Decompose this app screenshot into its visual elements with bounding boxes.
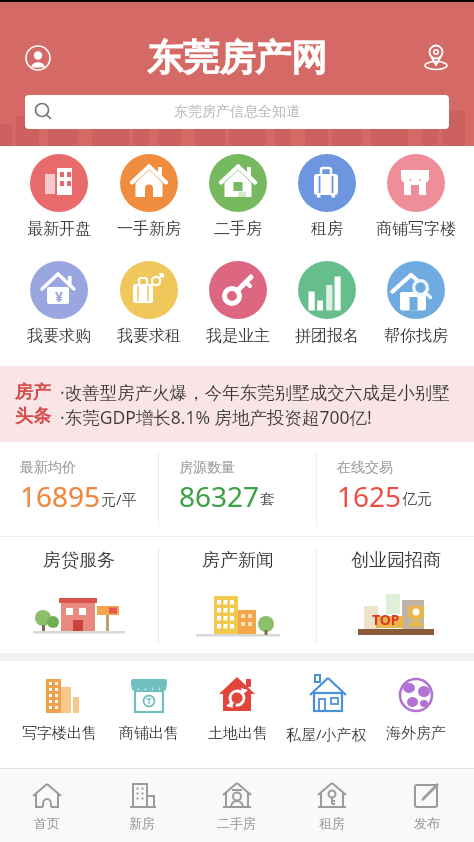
staticText: 最新开盘: [27, 219, 91, 239]
staticText: 土地出售: [208, 724, 268, 743]
button[interactable]: 最新开盘: [14, 154, 104, 239]
button[interactable]: 一手新房: [104, 154, 193, 239]
button[interactable]: 拼团报名: [282, 261, 371, 346]
staticText: 最新均价: [20, 459, 76, 477]
staticText: 元/平: [101, 489, 137, 509]
button[interactable]: 创业园招商: [317, 537, 474, 653]
staticText: 86327: [179, 477, 260, 515]
button[interactable]: 我要求租: [104, 261, 193, 346]
button[interactable]: 房产新闻: [159, 537, 316, 653]
button[interactable]: [25, 45, 51, 71]
staticText: ·改善型房产火爆，今年东莞别墅成交六成是小别墅: [60, 380, 450, 404]
staticText: 租房: [311, 219, 343, 239]
button[interactable]: 商铺写字楼: [371, 154, 460, 239]
staticText: 私屋/小产权: [286, 724, 367, 744]
button[interactable]: 房源数量: [159, 442, 316, 536]
button[interactable]: 首页: [0, 769, 94, 842]
staticText: 拼团报名: [295, 326, 359, 346]
button[interactable]: 房产: [0, 366, 474, 442]
staticText: 东莞房产信息全知道: [174, 103, 300, 121]
staticText: 亿元: [402, 490, 432, 509]
staticText: 首页: [34, 815, 60, 831]
staticText: 我要求租: [117, 326, 181, 346]
button[interactable]: 二手房: [193, 154, 282, 239]
staticText: 商铺写字楼: [376, 219, 456, 239]
button[interactable]: 海外房产: [371, 661, 460, 743]
button[interactable]: 商铺出售: [104, 661, 193, 743]
staticText: ¥: [55, 287, 64, 306]
button[interactable]: 私屋/小产权: [282, 661, 371, 744]
staticText: 套: [260, 490, 275, 509]
button[interactable]: 土地出售: [193, 661, 282, 743]
staticText: 商铺出售: [119, 724, 179, 743]
staticText: 二手房: [217, 815, 256, 831]
staticText: 二手房: [214, 219, 262, 239]
button[interactable]: 写字楼出售: [14, 661, 104, 743]
button[interactable]: 我是业主: [193, 261, 282, 346]
button[interactable]: 房贷服务: [0, 537, 158, 653]
staticText: 东莞房产网: [147, 35, 327, 80]
staticText: 头条: [15, 405, 51, 428]
staticText: 1625: [337, 477, 402, 515]
staticText: 在线交易: [337, 459, 393, 477]
button[interactable]: 帮你找房: [371, 261, 460, 346]
staticText: 新房: [129, 815, 155, 831]
button[interactable]: 二手房: [189, 769, 284, 842]
button[interactable]: 租房: [282, 154, 371, 239]
staticText: 我是业主: [206, 326, 270, 346]
staticText: 帮你找房: [384, 326, 448, 346]
staticText: 发布: [414, 815, 440, 831]
button[interactable]: 东莞房产信息全知道: [25, 95, 449, 129]
button[interactable]: [422, 43, 450, 71]
staticText: ·东莞GDP增长8.1% 房地产投资超700亿!: [60, 405, 372, 429]
button[interactable]: 发布: [379, 769, 474, 842]
staticText: 房产新闻: [202, 549, 274, 572]
button[interactable]: 在线交易: [317, 442, 474, 536]
staticText: 创业园招商: [351, 549, 441, 572]
button[interactable]: 租房: [284, 769, 379, 842]
staticText: 海外房产: [386, 724, 446, 743]
staticText: 房产: [15, 381, 51, 404]
button[interactable]: 最新均价: [0, 442, 158, 536]
staticText: TOP: [372, 610, 400, 629]
staticText: 房源数量: [179, 459, 235, 477]
staticText: 我要求购: [27, 326, 91, 346]
staticText: 一手新房: [117, 219, 181, 239]
staticText: 租房: [319, 815, 345, 831]
staticText: 写字楼出售: [22, 724, 97, 743]
button[interactable]: 新房: [94, 769, 189, 842]
staticText: 16895: [20, 477, 101, 515]
button[interactable]: ¥: [14, 261, 104, 346]
staticText: 房贷服务: [43, 549, 115, 572]
